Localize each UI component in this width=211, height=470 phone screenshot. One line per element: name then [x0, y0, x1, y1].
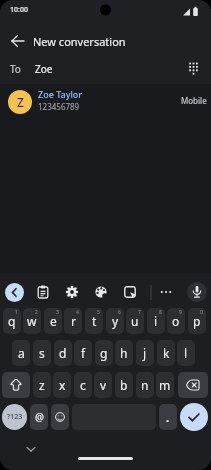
button[interactable]: u — [126, 308, 144, 334]
button[interactable]: . — [159, 404, 177, 430]
staticText: i — [154, 313, 158, 329]
staticText: c — [80, 377, 86, 393]
button[interactable]: l — [177, 340, 195, 366]
staticText: a — [18, 345, 25, 361]
button[interactable] — [7, 30, 29, 52]
staticText: 3 — [56, 309, 59, 316]
button[interactable]: v — [94, 372, 112, 398]
staticText: l — [184, 345, 188, 361]
staticText: 123456789 — [38, 101, 80, 112]
staticText: . — [166, 410, 170, 425]
staticText: j — [143, 345, 147, 361]
button[interactable] — [178, 372, 208, 398]
staticText: k — [163, 345, 170, 361]
button[interactable] — [35, 284, 51, 300]
button[interactable]: e — [44, 308, 62, 334]
staticText: 0 — [200, 309, 203, 316]
staticText: y — [112, 313, 119, 329]
staticText: To — [10, 62, 21, 76]
button[interactable]: @ — [30, 404, 48, 430]
staticText: Zoe — [35, 62, 53, 76]
button[interactable]: k — [157, 340, 175, 366]
button[interactable]: j — [136, 340, 154, 366]
button[interactable]: g — [95, 340, 113, 366]
button[interactable]: f — [74, 340, 92, 366]
button[interactable]: s — [33, 340, 51, 366]
button[interactable]: x — [53, 372, 71, 398]
staticText: f — [81, 345, 86, 361]
button[interactable]: z — [33, 372, 51, 398]
button[interactable] — [5, 283, 24, 302]
staticText: r — [71, 313, 76, 329]
button[interactable] — [51, 404, 69, 430]
button[interactable]: q — [3, 308, 21, 334]
staticText: 9 — [179, 309, 182, 316]
button[interactable] — [187, 282, 207, 302]
button[interactable]: ?123 — [2, 404, 27, 430]
staticText: 7 — [138, 309, 141, 316]
button[interactable]: a — [12, 340, 30, 366]
button[interactable] — [180, 403, 208, 431]
button[interactable]: p — [188, 308, 206, 334]
staticText: Mobile — [181, 95, 207, 106]
staticText: 4 — [76, 309, 79, 316]
staticText: h — [120, 345, 128, 361]
button[interactable]: t — [85, 308, 103, 334]
staticText: p — [193, 313, 201, 329]
staticText: x — [59, 377, 66, 393]
staticText: s — [39, 345, 45, 361]
staticText: Z — [17, 94, 24, 110]
staticText: d — [59, 345, 67, 361]
button[interactable] — [0, 86, 211, 118]
button[interactable]: c — [74, 372, 92, 398]
button[interactable]: r — [64, 308, 82, 334]
staticText: @ — [35, 410, 44, 424]
staticText: b — [120, 377, 128, 393]
button[interactable]: d — [54, 340, 72, 366]
staticText: ?123 — [7, 412, 23, 422]
button[interactable] — [122, 284, 138, 300]
button[interactable]: i — [147, 308, 165, 334]
button[interactable] — [158, 284, 174, 300]
button[interactable] — [184, 60, 204, 80]
staticText: Zoe Taylor — [38, 88, 83, 100]
button[interactable] — [64, 284, 80, 300]
staticText: z — [39, 377, 45, 393]
button[interactable] — [2, 372, 30, 398]
staticText: 8 — [159, 309, 162, 316]
button[interactable]: y — [106, 308, 124, 334]
staticText: 6 — [118, 309, 121, 316]
button[interactable]: b — [115, 372, 133, 398]
staticText: 1 — [15, 309, 18, 316]
staticText: q — [8, 313, 16, 329]
staticText: New conversation — [33, 34, 126, 49]
staticText: e — [50, 313, 57, 329]
staticText: 5 — [97, 309, 100, 316]
staticText: w — [27, 313, 37, 329]
staticText: t — [92, 313, 97, 329]
staticText: u — [131, 313, 139, 329]
staticText: 2 — [35, 309, 38, 316]
staticText: n — [141, 377, 149, 393]
staticText: o — [172, 313, 180, 329]
staticText: g — [100, 345, 108, 361]
staticText: m — [159, 377, 171, 393]
button[interactable]: w — [23, 308, 41, 334]
button[interactable] — [93, 284, 109, 300]
button[interactable]: m — [156, 372, 174, 398]
staticText: v — [100, 377, 107, 393]
button[interactable]: o — [167, 308, 185, 334]
button[interactable]: n — [136, 372, 154, 398]
staticText: 10:00 — [10, 5, 28, 15]
button[interactable]: h — [115, 340, 133, 366]
